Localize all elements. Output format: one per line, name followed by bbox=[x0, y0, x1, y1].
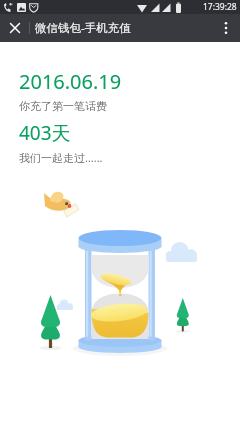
staticText: 微信钱包-手机充值 bbox=[35, 20, 131, 36]
staticText: 你充了第一笔话费 bbox=[19, 99, 107, 113]
staticText: 17:39:28 bbox=[203, 1, 237, 13]
staticText: 403天 bbox=[19, 120, 71, 146]
staticText: 2016.06.19 bbox=[19, 68, 122, 95]
button[interactable]: More options bbox=[212, 14, 240, 42]
button[interactable]: Close bbox=[0, 14, 29, 42]
staticText: 我们一起走过…… bbox=[19, 150, 103, 165]
